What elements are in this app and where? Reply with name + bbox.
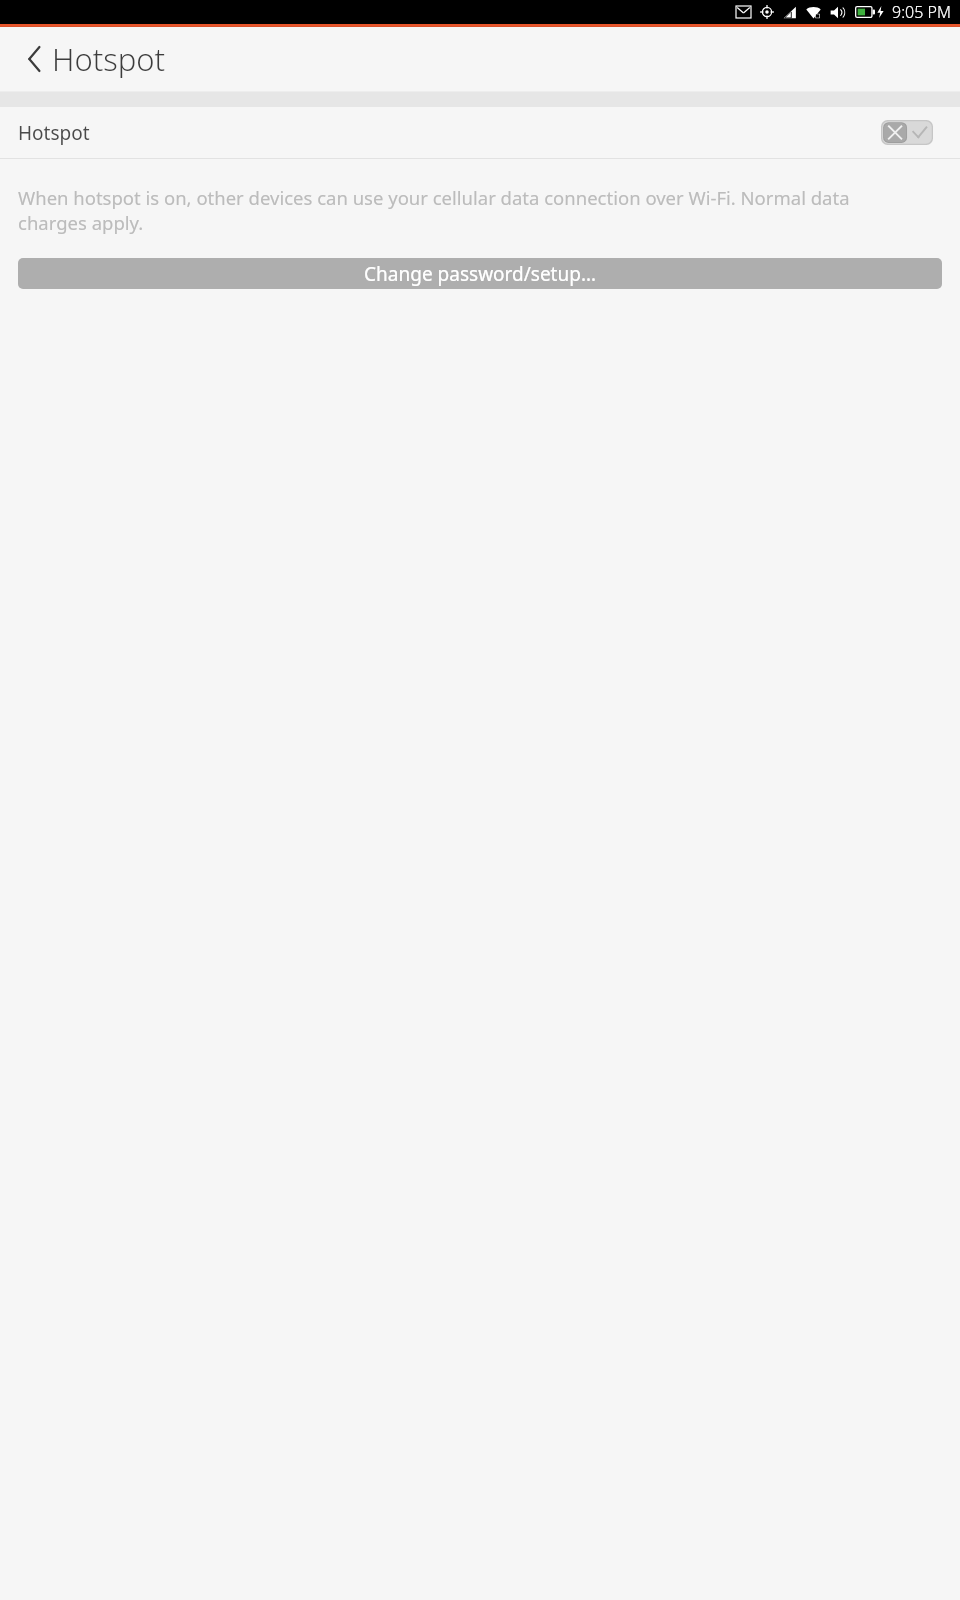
- button[interactable]: Change password/setup…: [18, 258, 942, 289]
- staticText: When hotspot is on, other devices can us…: [18, 185, 870, 236]
- button[interactable]: Back: [24, 40, 45, 78]
- staticText: Hotspot: [52, 38, 166, 80]
- staticText: Hotspot: [18, 120, 90, 146]
- button[interactable]: Hotspot: [0, 107, 960, 158]
- staticText: 9:05 PM: [892, 1, 951, 23]
- staticText: Change password/setup…: [364, 261, 596, 287]
- button[interactable]: Hotspot toggle, off: [881, 120, 933, 145]
